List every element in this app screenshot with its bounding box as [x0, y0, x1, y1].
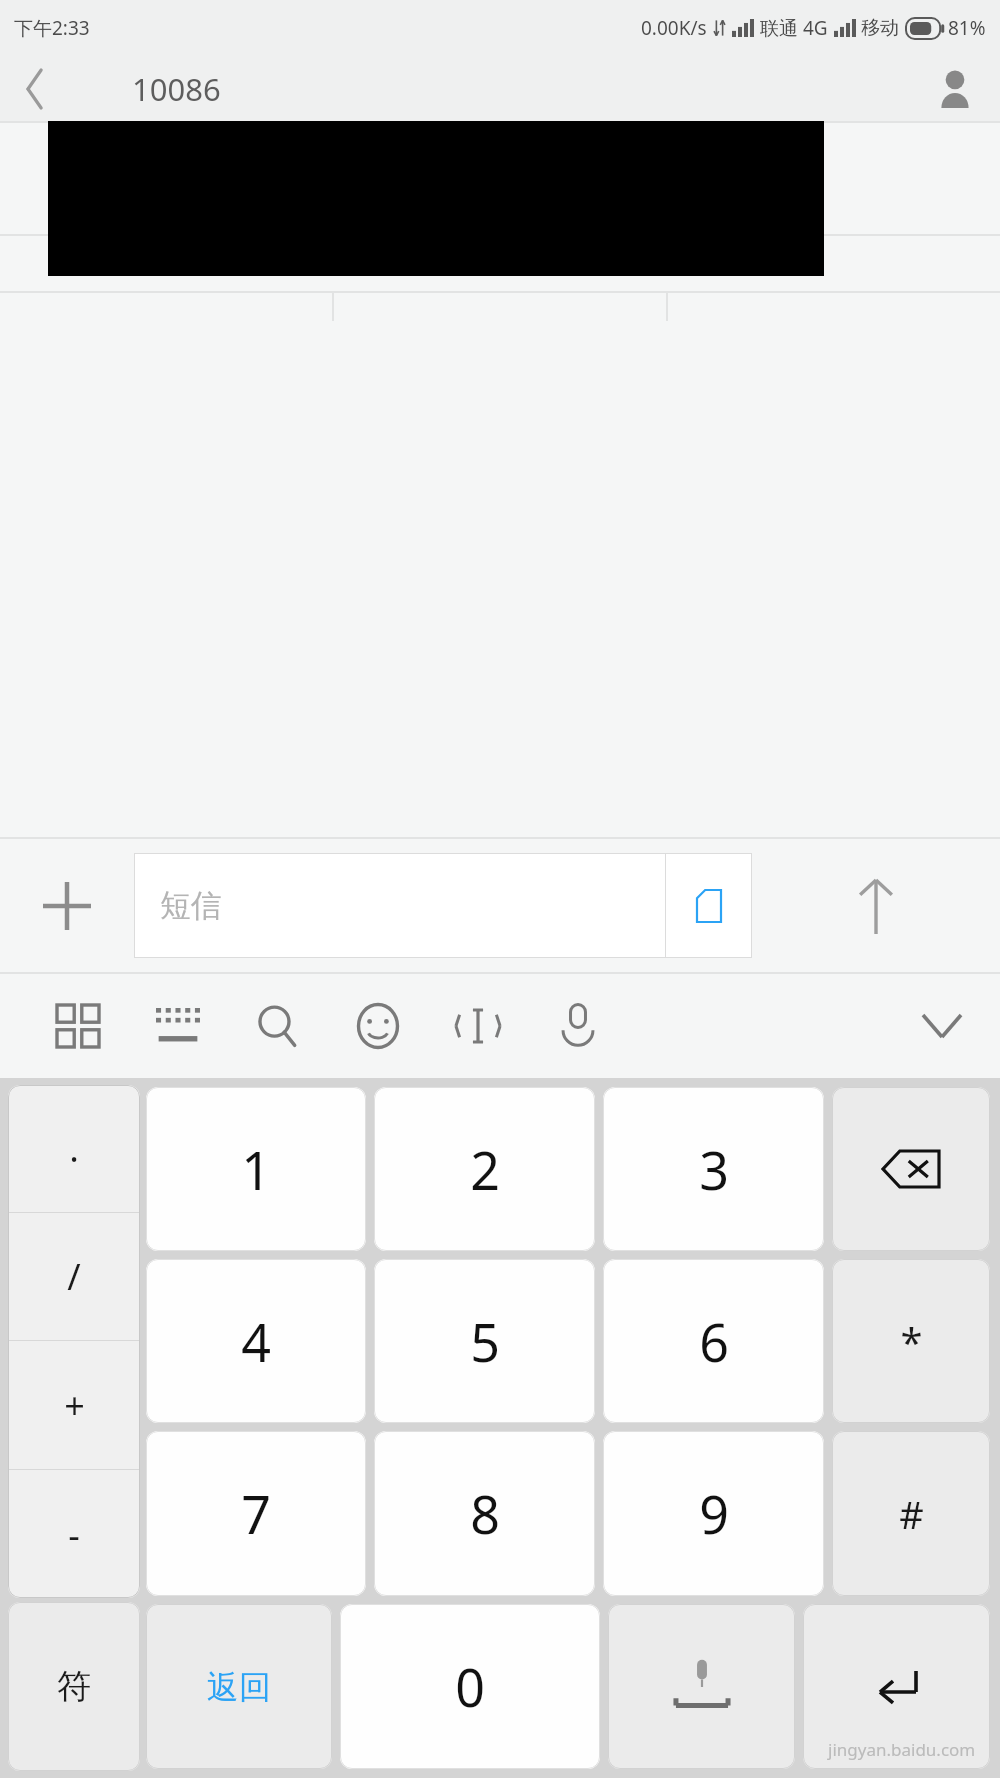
staticText: +: [64, 1381, 85, 1430]
staticText: 5: [470, 1306, 500, 1377]
button[interactable]: 5: [374, 1259, 595, 1423]
staticText: 10086: [132, 68, 221, 110]
staticText: *: [900, 1314, 923, 1368]
button[interactable]: 8: [374, 1431, 595, 1596]
button[interactable]: 7: [146, 1431, 366, 1596]
staticText: 1: [241, 1134, 271, 1205]
button[interactable]: 短信: [134, 853, 665, 958]
button[interactable]: /: [8, 1213, 140, 1340]
staticText: 符: [57, 1665, 91, 1708]
button[interactable]: Keyboard layout: [128, 974, 228, 1078]
staticText: 8: [470, 1478, 500, 1549]
staticText: #: [899, 1488, 924, 1540]
staticText: -: [68, 1510, 80, 1559]
button[interactable]: SIM card: [666, 853, 752, 958]
button[interactable]: Space, voice input: [608, 1604, 795, 1769]
button[interactable]: Apps: [28, 974, 128, 1078]
staticText: 短信: [160, 886, 222, 925]
button[interactable]: +: [8, 1341, 140, 1469]
button[interactable]: -: [8, 1470, 140, 1598]
staticText: 7: [241, 1478, 271, 1549]
staticText: 6: [699, 1306, 729, 1377]
staticText: 移动: [861, 16, 899, 40]
staticText: 4: [241, 1306, 271, 1377]
staticText: 81%: [948, 15, 986, 41]
staticText: 返回: [207, 1667, 271, 1707]
staticText: 0.00K/s: [641, 15, 707, 41]
staticText: .: [69, 1124, 79, 1173]
button[interactable]: 0: [340, 1604, 600, 1769]
button[interactable]: Back: [0, 56, 70, 121]
button[interactable]: Search: [228, 974, 328, 1078]
button[interactable]: Voice input: [528, 974, 628, 1078]
button[interactable]: Add attachment: [0, 839, 134, 972]
button[interactable]: Enter: [803, 1604, 990, 1769]
button[interactable]: 返回: [146, 1604, 332, 1769]
button[interactable]: Delete: [832, 1087, 990, 1251]
button[interactable]: 6: [603, 1259, 824, 1423]
button[interactable]: Send: [752, 839, 1000, 972]
button[interactable]: Hide keyboard: [892, 974, 992, 1078]
button[interactable]: 4: [146, 1259, 366, 1423]
button[interactable]: 9: [603, 1431, 824, 1596]
button[interactable]: Contact details: [910, 56, 1000, 121]
button[interactable]: 1: [146, 1087, 366, 1251]
staticText: 2: [470, 1134, 500, 1205]
staticText: jingyan.baidu.com: [828, 1738, 976, 1761]
button[interactable]: Emoji: [328, 974, 428, 1078]
button[interactable]: 2: [374, 1087, 595, 1251]
staticText: 9: [699, 1478, 729, 1549]
staticText: 联通 4G: [760, 15, 828, 41]
staticText: 下午2:33: [14, 15, 90, 41]
staticText: 3: [699, 1134, 729, 1205]
staticText: 0: [455, 1651, 485, 1722]
button[interactable]: Move cursor: [428, 974, 528, 1078]
button[interactable]: 符: [8, 1602, 140, 1771]
button[interactable]: 3: [603, 1087, 824, 1251]
button[interactable]: .: [8, 1085, 140, 1212]
staticText: /: [67, 1252, 81, 1301]
button[interactable]: #: [832, 1431, 990, 1596]
button[interactable]: *: [832, 1259, 990, 1423]
